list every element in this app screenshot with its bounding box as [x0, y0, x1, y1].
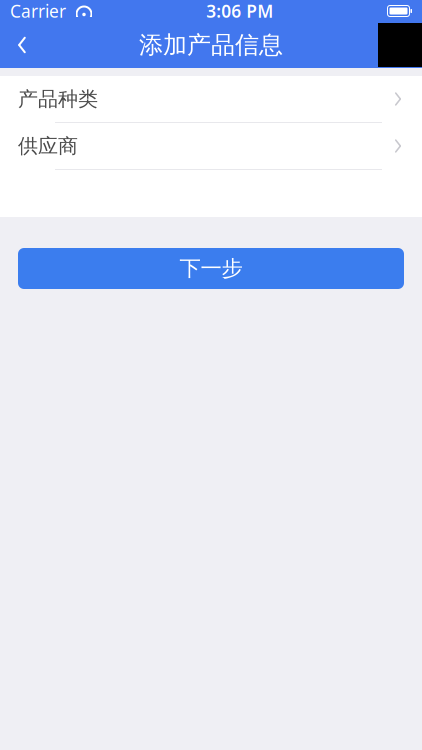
button[interactable]: 产品种类	[0, 76, 422, 123]
button[interactable]: 供应商	[0, 123, 422, 170]
staticText: 供应商	[18, 134, 78, 158]
staticText: 添加产品信息	[139, 30, 283, 60]
staticText: 下一步	[179, 255, 242, 282]
staticText: Carrier	[10, 0, 66, 22]
staticText: 3:06 PM	[206, 0, 273, 22]
button[interactable]: 下一步	[18, 248, 404, 289]
button[interactable]: 返回	[0, 23, 44, 67]
staticText: 产品种类	[18, 87, 98, 111]
